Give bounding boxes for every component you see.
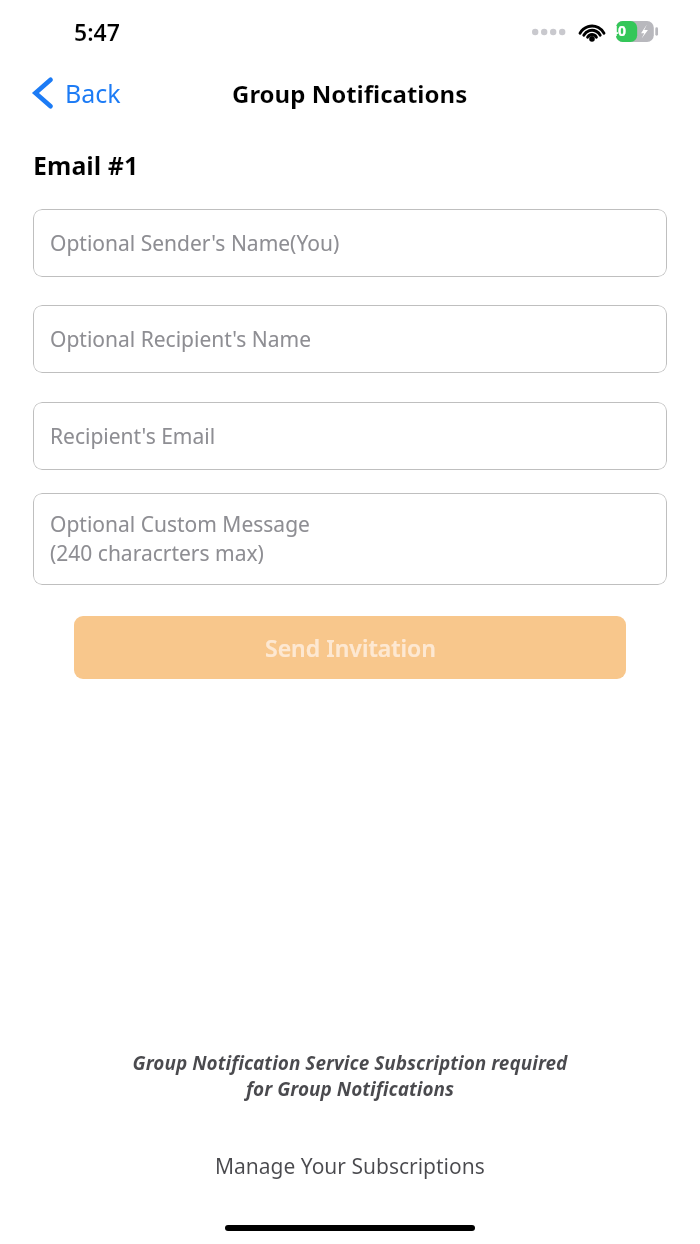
button[interactable]: Optional Custom Message [33,493,667,585]
staticText: Recipient's Email [50,422,216,451]
staticText: Optional Recipient's Name [50,325,312,354]
button[interactable]: Manage Your Subscriptions [205,1146,495,1187]
staticText: Send Invitation [265,632,436,663]
staticText: (240 characrters max) [50,539,264,568]
staticText: Group Notifications [232,77,468,110]
staticText: Email #1 [33,148,139,182]
button[interactable]: Recipient's Email [33,402,667,470]
staticText: Back [65,76,121,110]
button[interactable]: Optional Sender's Name(You) [33,209,667,277]
staticText: Group Notification Service Subscription … [40,1050,660,1102]
staticText: 40 [610,21,627,40]
staticText: 5:47 [74,16,120,47]
staticText: Optional Custom Message [50,510,310,539]
button[interactable]: Send Invitation [74,616,626,679]
staticText: Optional Sender's Name(You) [50,229,340,258]
button[interactable]: Optional Recipient's Name [33,305,667,373]
button[interactable]: Back [26,70,129,116]
